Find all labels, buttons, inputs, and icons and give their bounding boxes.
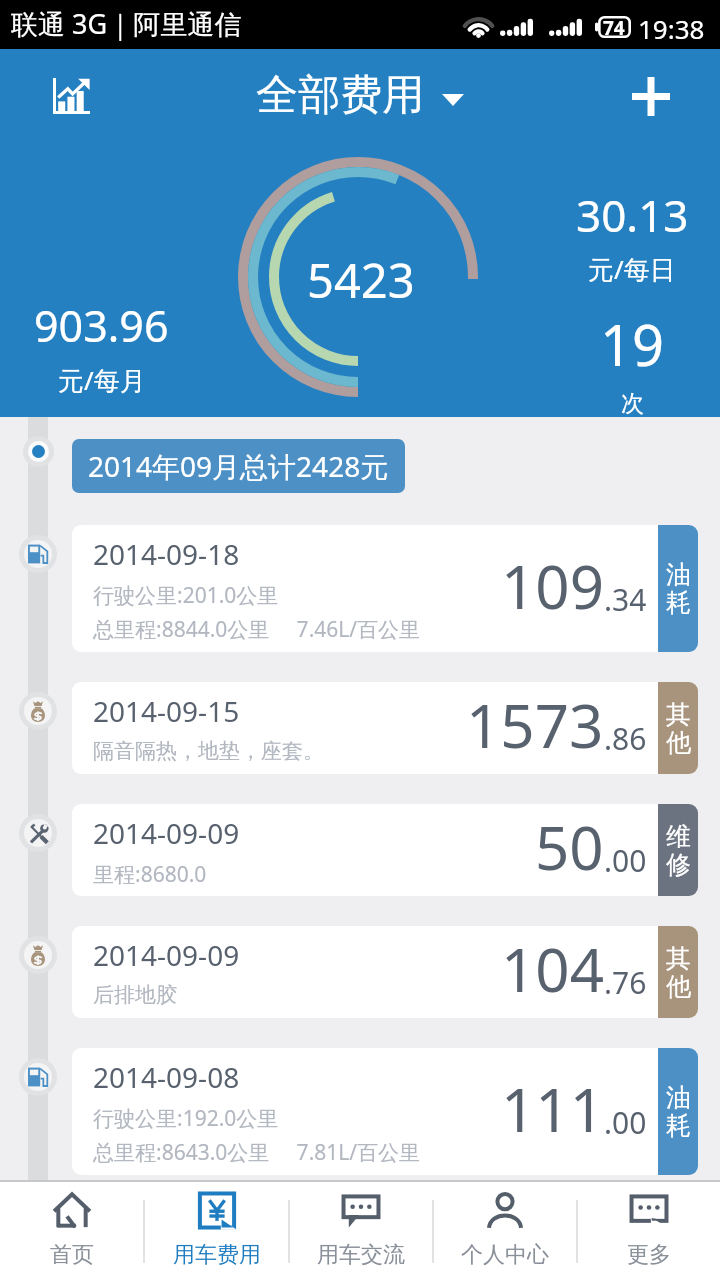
button[interactable]: 个人中心 bbox=[434, 1182, 576, 1280]
button[interactable]: 统计图表 bbox=[41, 66, 101, 126]
staticText: 行驶公里:192.0公里 bbox=[93, 1104, 279, 1133]
staticText: 用车费用 bbox=[173, 1241, 261, 1269]
staticText: 903.96 bbox=[34, 296, 169, 355]
staticText: 里程:8680.0 bbox=[93, 860, 207, 889]
staticText: 50 bbox=[535, 806, 604, 888]
staticText: 其他 bbox=[665, 699, 692, 758]
staticText: 30.13 bbox=[576, 185, 689, 245]
staticText: 2014年09月总计2428元 bbox=[88, 447, 389, 485]
staticText: .34 bbox=[604, 579, 647, 620]
staticText: 2014-09-09 bbox=[93, 936, 240, 974]
button[interactable]: 添加 bbox=[620, 65, 682, 127]
button[interactable]: 全部费用 bbox=[248, 69, 472, 122]
staticText: 维修 bbox=[665, 821, 692, 880]
staticText: 后排地胶 bbox=[93, 982, 177, 1008]
button[interactable]: 更多 bbox=[578, 1182, 720, 1280]
staticText: 19 bbox=[600, 306, 665, 382]
button[interactable]: 2014-09-09 bbox=[72, 804, 698, 896]
staticText: 2014-09-09 bbox=[93, 814, 240, 852]
staticText: 首页 bbox=[50, 1241, 94, 1269]
staticText: 2014-09-15 bbox=[93, 692, 240, 730]
staticText: 5423 bbox=[307, 248, 415, 312]
staticText: 总里程:8844.0公里 7.46L/百公里 bbox=[93, 615, 421, 644]
staticText: 74 bbox=[603, 15, 625, 37]
button[interactable]: 2014年09月总计2428元 bbox=[72, 439, 405, 493]
staticText: 元/每日 bbox=[588, 251, 676, 287]
button[interactable]: 用车交流 bbox=[290, 1182, 432, 1280]
staticText: .86 bbox=[604, 718, 647, 759]
staticText: 2014-09-18 bbox=[93, 535, 240, 573]
staticText: .00 bbox=[604, 1102, 647, 1143]
button[interactable]: 2014-09-15 bbox=[72, 682, 698, 774]
button[interactable]: 首页 bbox=[0, 1182, 143, 1280]
staticText: 隔音隔热，地垫，座套。 bbox=[93, 738, 324, 764]
staticText: 用车交流 bbox=[317, 1241, 405, 1269]
staticText: 109 bbox=[501, 545, 604, 627]
staticText: 油耗 bbox=[665, 1082, 692, 1141]
staticText: 行驶公里:201.0公里 bbox=[93, 581, 279, 610]
button[interactable]: 2014-09-18 bbox=[72, 525, 698, 652]
staticText: 其他 bbox=[665, 943, 692, 1002]
staticText: .00 bbox=[604, 840, 647, 881]
staticText: 111 bbox=[501, 1068, 604, 1150]
button[interactable]: 用车费用 bbox=[145, 1182, 288, 1280]
staticText: 更多 bbox=[627, 1241, 671, 1269]
staticText: 油耗 bbox=[665, 559, 692, 618]
button[interactable]: 2014-09-09 bbox=[72, 926, 698, 1018]
staticText: 次 bbox=[621, 389, 644, 418]
button[interactable]: 2014-09-08 bbox=[72, 1048, 698, 1175]
staticText: 104 bbox=[501, 928, 604, 1010]
staticText: 总里程:8643.0公里 7.81L/百公里 bbox=[93, 1138, 421, 1167]
staticText: 联通 3G｜阿里通信 bbox=[11, 5, 242, 42]
staticText: 1573 bbox=[466, 684, 604, 766]
staticText: 2014-09-08 bbox=[93, 1058, 240, 1096]
staticText: .76 bbox=[604, 962, 647, 1003]
staticText: 个人中心 bbox=[461, 1241, 549, 1269]
staticText: 全部费用 bbox=[256, 69, 424, 122]
staticText: 19:38 bbox=[638, 11, 705, 46]
staticText: 元/每月 bbox=[58, 362, 146, 398]
